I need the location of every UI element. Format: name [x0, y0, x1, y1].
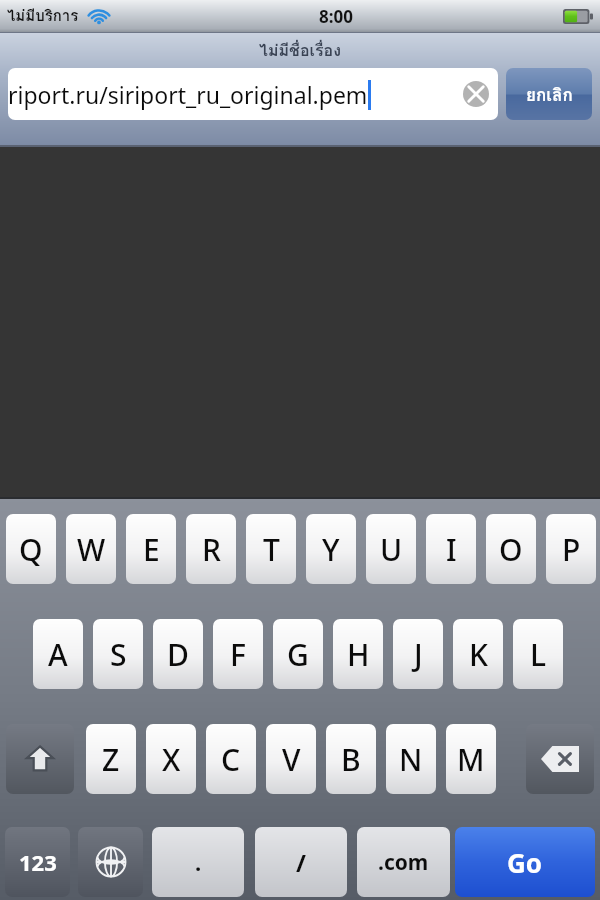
- button[interactable]: riport.ru/siriport_ru_original.pem: [8, 68, 498, 120]
- button[interactable]: H: [333, 619, 383, 689]
- button[interactable]: B: [326, 724, 376, 794]
- button[interactable]: J: [393, 619, 443, 689]
- staticText: A: [48, 634, 68, 675]
- button[interactable]: Z: [86, 724, 136, 794]
- button[interactable]: Shift: [6, 724, 74, 794]
- button[interactable]: R: [186, 514, 236, 584]
- staticText: ไม่มีบริการ: [7, 4, 79, 28]
- button[interactable]: F: [213, 619, 263, 689]
- button[interactable]: X: [146, 724, 196, 794]
- staticText: ยกเลิก: [526, 81, 573, 108]
- button[interactable]: Q: [6, 514, 56, 584]
- button[interactable]: /: [255, 827, 347, 897]
- staticText: K: [469, 634, 488, 675]
- staticText: .com: [378, 848, 429, 877]
- button[interactable]: P: [546, 514, 596, 584]
- staticText: U: [380, 529, 403, 570]
- button[interactable]: Clear text: [454, 72, 498, 116]
- staticText: L: [530, 634, 547, 675]
- button[interactable]: O: [486, 514, 536, 584]
- staticText: Y: [322, 529, 340, 570]
- button[interactable]: C: [206, 724, 256, 794]
- button[interactable]: N: [386, 724, 436, 794]
- staticText: ไม่มีชื่อเรื่อง: [259, 38, 341, 63]
- button[interactable]: Backspace: [526, 724, 594, 794]
- staticText: riport.ru/siriport_ru_original.pem: [8, 79, 368, 110]
- staticText: Q: [19, 529, 43, 570]
- button[interactable]: 123: [5, 827, 70, 897]
- staticText: C: [221, 739, 241, 780]
- button[interactable]: D: [153, 619, 203, 689]
- button[interactable]: S: [93, 619, 143, 689]
- button[interactable]: U: [366, 514, 416, 584]
- button[interactable]: K: [453, 619, 503, 689]
- staticText: .: [195, 847, 202, 877]
- button[interactable]: L: [513, 619, 563, 689]
- button[interactable]: M: [446, 724, 496, 794]
- staticText: B: [341, 739, 361, 780]
- button[interactable]: ยกเลิก: [506, 68, 592, 120]
- staticText: R: [202, 529, 221, 570]
- button[interactable]: T: [246, 514, 296, 584]
- staticText: J: [414, 634, 423, 675]
- staticText: Go: [507, 845, 543, 880]
- staticText: P: [562, 529, 581, 570]
- button[interactable]: V: [266, 724, 316, 794]
- button[interactable]: A: [33, 619, 83, 689]
- button[interactable]: Y: [306, 514, 356, 584]
- staticText: O: [499, 529, 523, 570]
- button[interactable]: Change keyboard language: [78, 827, 143, 897]
- button[interactable]: Go: [455, 827, 595, 897]
- staticText: /: [296, 846, 306, 879]
- button[interactable]: I: [426, 514, 476, 584]
- staticText: Z: [102, 739, 120, 780]
- staticText: H: [347, 634, 370, 675]
- staticText: 123: [19, 847, 57, 877]
- staticText: 8:00: [319, 5, 353, 28]
- staticText: N: [399, 739, 423, 780]
- staticText: S: [110, 634, 127, 675]
- button[interactable]: .com: [357, 827, 450, 897]
- staticText: I: [446, 529, 457, 570]
- staticText: G: [287, 634, 309, 675]
- staticText: D: [167, 634, 189, 675]
- staticText: W: [77, 529, 106, 570]
- button[interactable]: W: [66, 514, 116, 584]
- staticText: E: [143, 529, 160, 570]
- staticText: X: [162, 739, 181, 780]
- staticText: M: [457, 739, 485, 780]
- button[interactable]: E: [126, 514, 176, 584]
- staticText: V: [282, 739, 301, 780]
- staticText: F: [230, 634, 246, 675]
- button[interactable]: .: [152, 827, 244, 897]
- button[interactable]: G: [273, 619, 323, 689]
- staticText: T: [263, 529, 280, 570]
